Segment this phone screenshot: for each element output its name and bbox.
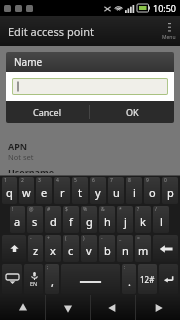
button[interactable]: # xyxy=(45,206,61,233)
staticText: # xyxy=(47,206,51,213)
staticText: n xyxy=(122,243,129,258)
button[interactable]: Cancel xyxy=(6,101,89,123)
staticText: v xyxy=(86,243,92,258)
button[interactable]: 1 xyxy=(2,177,17,204)
staticText: g xyxy=(86,214,93,229)
button[interactable]: 5 xyxy=(72,177,88,204)
button[interactable]: ? xyxy=(135,206,151,233)
staticText: EN xyxy=(30,280,38,287)
button[interactable]: - xyxy=(28,235,43,262)
staticText: _ xyxy=(119,235,122,242)
staticText: APN xyxy=(8,140,28,152)
staticText: m xyxy=(138,243,149,258)
staticText: : xyxy=(124,264,126,271)
staticText: f xyxy=(69,214,73,229)
button[interactable]: Space xyxy=(61,264,120,294)
staticText: % xyxy=(83,206,88,213)
staticText: o xyxy=(149,185,156,200)
button[interactable]: ! xyxy=(10,206,25,233)
button[interactable]: Backspace xyxy=(153,235,178,262)
staticText: j xyxy=(124,214,127,229)
button[interactable]: 2 xyxy=(19,177,34,204)
staticText: Cancel xyxy=(33,106,62,118)
staticText: w xyxy=(22,185,31,200)
staticText: s xyxy=(32,214,38,229)
staticText: q xyxy=(6,185,13,200)
button[interactable]: Hide keyboard xyxy=(2,264,22,294)
staticText: x xyxy=(50,243,56,258)
staticText: l xyxy=(160,214,163,229)
button[interactable]: Shift xyxy=(2,235,26,262)
staticText: - xyxy=(30,235,32,242)
staticText: u xyxy=(113,185,120,200)
button[interactable]: _ xyxy=(117,235,133,262)
staticText: t xyxy=(78,185,82,200)
button[interactable]: / xyxy=(153,206,169,233)
button[interactable]: & xyxy=(99,206,115,233)
staticText: 7 xyxy=(110,177,113,184)
staticText: e xyxy=(41,185,48,200)
button[interactable]: * xyxy=(117,206,133,233)
staticText: b xyxy=(104,243,111,258)
button[interactable]: % xyxy=(81,206,97,233)
button[interactable]: 12# xyxy=(138,264,157,294)
staticText: z xyxy=(33,243,39,258)
staticText: = xyxy=(137,235,140,242)
button[interactable]: Up xyxy=(0,295,45,320)
staticText: ( xyxy=(65,235,67,242)
button[interactable]: 4 xyxy=(54,177,70,204)
staticText: @ xyxy=(29,206,34,213)
button[interactable]: Menu xyxy=(158,16,180,46)
staticText: 10:50 xyxy=(153,2,177,14)
button[interactable]: Right xyxy=(136,295,180,320)
staticText: c xyxy=(68,243,74,258)
button[interactable]: 8 xyxy=(126,177,142,204)
staticText: - xyxy=(101,235,103,242)
button[interactable]: Voice input xyxy=(24,264,43,294)
staticText: OK xyxy=(126,106,139,118)
button[interactable]: - xyxy=(99,235,115,262)
button[interactable]: 7 xyxy=(108,177,124,204)
button[interactable]: Enter xyxy=(159,264,178,294)
button[interactable]: Left xyxy=(91,295,135,320)
staticText: , xyxy=(51,274,54,289)
button[interactable]: ( xyxy=(63,235,79,262)
staticText: Edit access point xyxy=(8,24,94,39)
staticText: + xyxy=(47,235,50,242)
staticText: . xyxy=(128,274,131,289)
button[interactable]: @ xyxy=(27,206,43,233)
button[interactable]: Down xyxy=(46,295,90,320)
staticText: i xyxy=(133,185,136,200)
button[interactable]: OK xyxy=(90,101,174,123)
staticText: 9 xyxy=(146,177,149,184)
staticText: * xyxy=(119,206,122,213)
staticText: k xyxy=(140,214,146,229)
button[interactable]: ; xyxy=(45,264,59,294)
button[interactable] xyxy=(12,78,168,95)
staticText: p xyxy=(167,185,174,200)
staticText: 8 xyxy=(128,177,131,184)
staticText: ! xyxy=(12,206,14,213)
staticText: ; xyxy=(47,264,49,271)
staticText: r xyxy=(60,185,65,200)
staticText: 3 xyxy=(38,177,41,184)
staticText: 6 xyxy=(92,177,95,184)
staticText: 1 xyxy=(4,177,7,184)
staticText: h xyxy=(104,214,111,229)
staticText: Name xyxy=(8,48,35,60)
button[interactable]: 6 xyxy=(90,177,106,204)
staticText: & xyxy=(101,206,105,213)
button[interactable]: + xyxy=(45,235,61,262)
button[interactable]: $ xyxy=(63,206,79,233)
staticText: Menu xyxy=(162,34,176,41)
staticText: Username xyxy=(8,166,55,173)
staticText: 12# xyxy=(140,274,155,285)
button[interactable]: ) xyxy=(81,235,97,262)
button[interactable]: 0 xyxy=(162,177,178,204)
staticText: ? xyxy=(137,206,140,213)
staticText: 5 xyxy=(74,177,77,184)
button[interactable]: : xyxy=(122,264,136,294)
button[interactable]: 3 xyxy=(36,177,52,204)
button[interactable]: 9 xyxy=(144,177,160,204)
button[interactable]: = xyxy=(135,235,151,262)
